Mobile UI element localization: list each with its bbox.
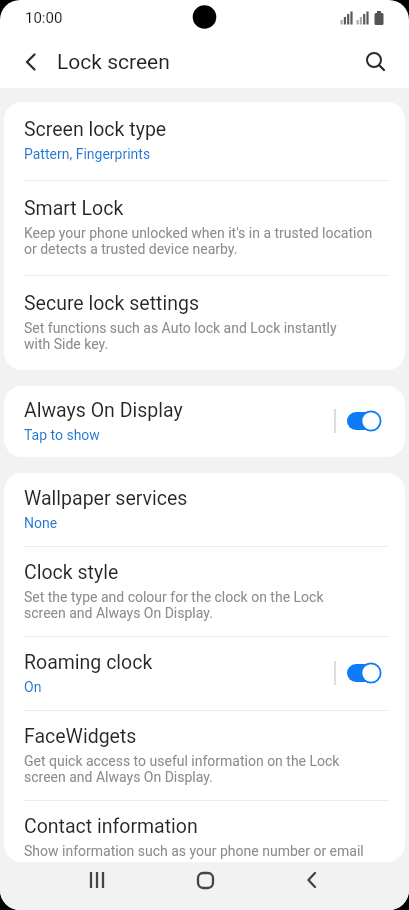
button[interactable]: Screen lock type	[4, 102, 405, 180]
button[interactable]: Roaming clock	[4, 637, 405, 710]
staticText: Contact information	[24, 815, 198, 838]
button[interactable]	[194, 869, 216, 891]
button[interactable]	[22, 53, 40, 71]
staticText: Smart Lock	[24, 197, 124, 220]
staticText: Tap to show	[24, 427, 100, 443]
staticText: Secure lock settings	[24, 292, 199, 315]
button[interactable]: Wallpaper services	[4, 473, 405, 546]
staticText: Get quick access to useful information o…	[24, 753, 340, 785]
button[interactable]: Always On Display	[4, 386, 405, 457]
staticText: Roaming clock	[24, 651, 153, 674]
staticText: Lock screen	[57, 50, 170, 75]
staticText: Show information such as your phone numb…	[24, 843, 364, 859]
staticText: 10:00	[25, 9, 63, 27]
button[interactable]: Clock style	[4, 547, 405, 636]
button[interactable]: FaceWidgets	[4, 711, 405, 800]
button[interactable]: Smart Lock	[4, 181, 405, 275]
button[interactable]	[86, 869, 108, 891]
staticText: None	[24, 515, 58, 531]
staticText: Set the type and colour for the clock on…	[24, 589, 324, 621]
staticText: FaceWidgets	[24, 725, 137, 748]
staticText: Pattern, Fingerprints	[24, 146, 151, 162]
button[interactable]	[301, 869, 323, 891]
staticText: Always On Display	[24, 399, 183, 422]
staticText: Keep your phone unlocked when it's in a …	[24, 225, 373, 257]
staticText: Screen lock type	[24, 118, 167, 141]
staticText: Clock style	[24, 561, 119, 584]
button[interactable]: Contact information	[4, 801, 405, 862]
button[interactable]: Secure lock settings	[4, 276, 405, 370]
staticText: Set functions such as Auto lock and Lock…	[24, 320, 337, 352]
staticText: Wallpaper services	[24, 487, 188, 510]
button[interactable]	[365, 51, 387, 73]
staticText: On	[24, 679, 42, 695]
